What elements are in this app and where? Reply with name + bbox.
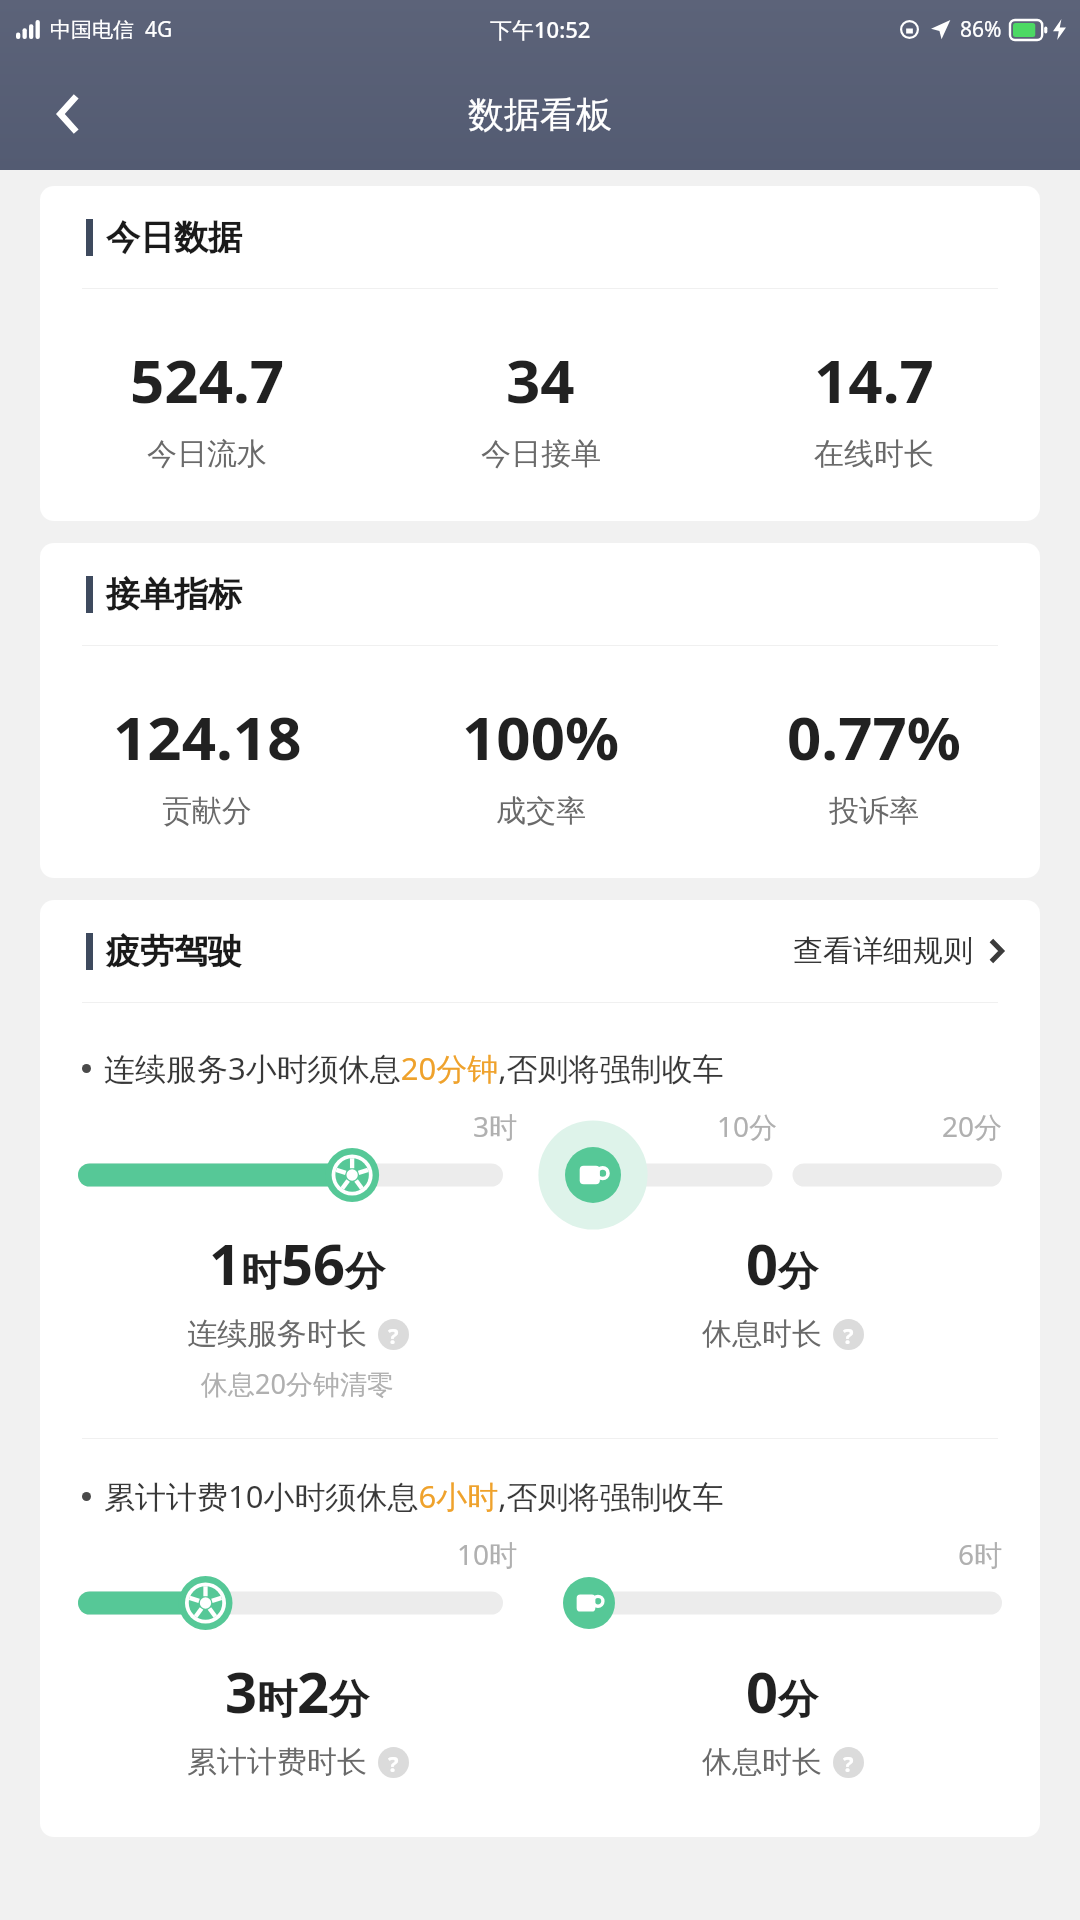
staticText: 休息时长 <box>702 1743 822 1781</box>
button[interactable]: 说明 <box>378 1319 409 1350</box>
staticText: 10分 <box>563 1107 777 1145</box>
staticText: ? <box>388 1320 399 1350</box>
staticText: 0分 <box>746 1225 819 1301</box>
staticText: 贡献分 <box>162 792 252 830</box>
staticText: 100% <box>462 696 620 778</box>
staticText: 累计计费时长 <box>187 1743 367 1781</box>
staticText: 中国电信 <box>50 17 134 43</box>
staticText: 接单指标 <box>106 573 242 616</box>
staticText: 休息20分钟清零 <box>201 1365 394 1402</box>
staticText: 查看详细规则 <box>793 932 973 970</box>
staticText: ? <box>843 1320 854 1350</box>
button[interactable]: 查看详细规则 <box>769 900 1040 1002</box>
staticText: 投诉率 <box>829 792 919 830</box>
staticText: 524.7 <box>130 339 285 421</box>
staticText: 数据看板 <box>468 92 612 137</box>
staticText: 6时 <box>563 1535 1002 1573</box>
staticText: ? <box>388 1748 399 1778</box>
staticText: 14.7 <box>814 339 934 421</box>
staticText: ? <box>843 1748 854 1778</box>
staticText: 86% <box>960 15 1002 44</box>
staticText: 连续服务时长 <box>187 1315 367 1353</box>
staticText: 20分 <box>787 1107 1002 1145</box>
staticText: 在线时长 <box>814 435 934 473</box>
staticText: 成交率 <box>496 792 586 830</box>
staticText: 10时 <box>78 1535 517 1573</box>
staticText: 休息时长 <box>702 1315 822 1353</box>
staticText: 3时 <box>78 1107 517 1145</box>
staticText: 疲劳驾驶 <box>106 930 242 973</box>
staticText: 今日流水 <box>147 435 267 473</box>
staticText: 34 <box>506 339 575 421</box>
button[interactable]: 说明 <box>833 1747 864 1778</box>
staticText: 0.77% <box>787 696 961 778</box>
staticText: 0分 <box>746 1653 819 1729</box>
staticText: 124.18 <box>113 696 302 778</box>
staticText: 连续服务3小时须休息20分钟,否则将强制收车 <box>104 1047 724 1089</box>
button[interactable]: 说明 <box>378 1747 409 1778</box>
staticText: 4G <box>145 15 173 44</box>
staticText: 1时56分 <box>209 1225 386 1301</box>
staticText: 今日数据 <box>106 216 242 259</box>
button[interactable]: 说明 <box>833 1319 864 1350</box>
staticText: 下午10:52 <box>490 14 591 44</box>
staticText: 3时2分 <box>225 1653 370 1729</box>
staticText: 今日接单 <box>481 435 601 473</box>
staticText: 累计计费10小时须休息6小时,否则将强制收车 <box>104 1475 724 1517</box>
button[interactable]: Back <box>34 79 104 149</box>
